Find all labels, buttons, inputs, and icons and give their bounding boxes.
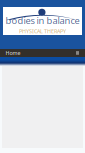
button[interactable]: Menu (76, 49, 79, 57)
staticText: PHYSICAL THERAPY (19, 28, 66, 35)
button[interactable]: Home (3, 49, 24, 57)
staticText: bodies in balance (5, 14, 79, 27)
staticText: Home (5, 49, 20, 57)
